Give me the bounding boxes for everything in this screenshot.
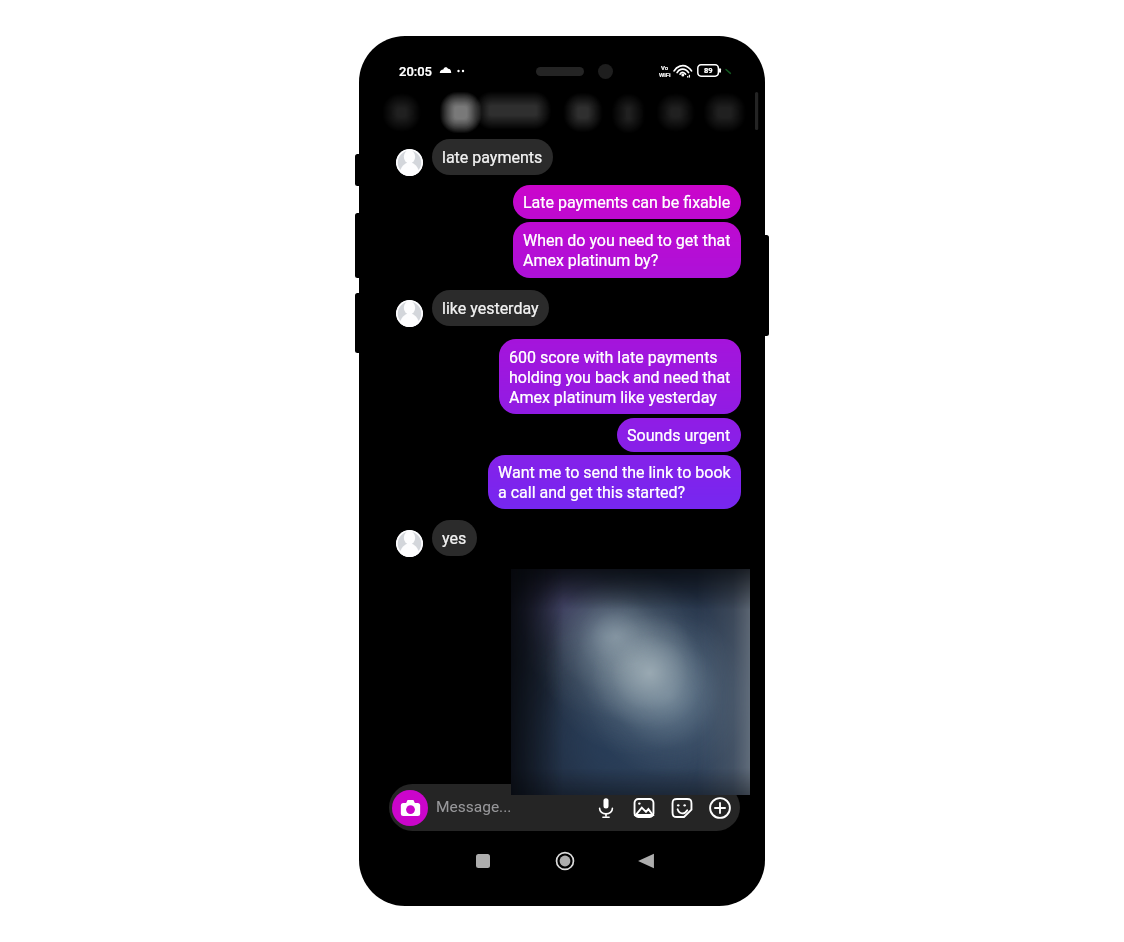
button[interactable]: Attach (705, 793, 735, 823)
staticText: 20:05 (399, 64, 433, 79)
button[interactable]: late payments (432, 139, 553, 175)
staticText: 600 score with late payments holding you… (509, 347, 731, 407)
staticText: late payments (442, 147, 543, 167)
button[interactable]: 600 score with late payments holding you… (499, 339, 741, 414)
staticText: Want me to send the link to book a call … (498, 462, 731, 502)
button[interactable]: like yesterday (432, 290, 549, 326)
button[interactable]: Stickers (667, 793, 697, 823)
staticText: Vo (661, 64, 669, 71)
button[interactable]: Recents (465, 843, 501, 879)
staticText: Late payments can be fixable (523, 192, 731, 212)
button[interactable]: Late payments can be fixable (513, 185, 741, 219)
button[interactable]: Conversation toolbar (359, 85, 765, 132)
staticText: like yesterday (442, 298, 539, 318)
staticText: 89 (704, 66, 713, 75)
staticText: When do you need to get that Amex platin… (523, 230, 731, 270)
button[interactable]: Gallery (629, 793, 659, 823)
staticText: Message... (436, 798, 512, 816)
staticText: Sounds urgent (627, 425, 731, 445)
staticText: WiFi (659, 71, 671, 78)
button[interactable]: Sounds urgent (617, 418, 741, 452)
button[interactable]: Want me to send the link to book a call … (488, 455, 741, 509)
button[interactable]: Back (628, 843, 664, 879)
button[interactable]: Voice message (591, 793, 621, 823)
button[interactable]: yes (432, 520, 477, 556)
button[interactable]: Photo attachment (511, 569, 750, 795)
button[interactable]: When do you need to get that Amex platin… (513, 222, 741, 278)
button[interactable]: Camera (392, 790, 428, 826)
staticText: yes (442, 528, 467, 548)
button[interactable]: Home (547, 843, 583, 879)
